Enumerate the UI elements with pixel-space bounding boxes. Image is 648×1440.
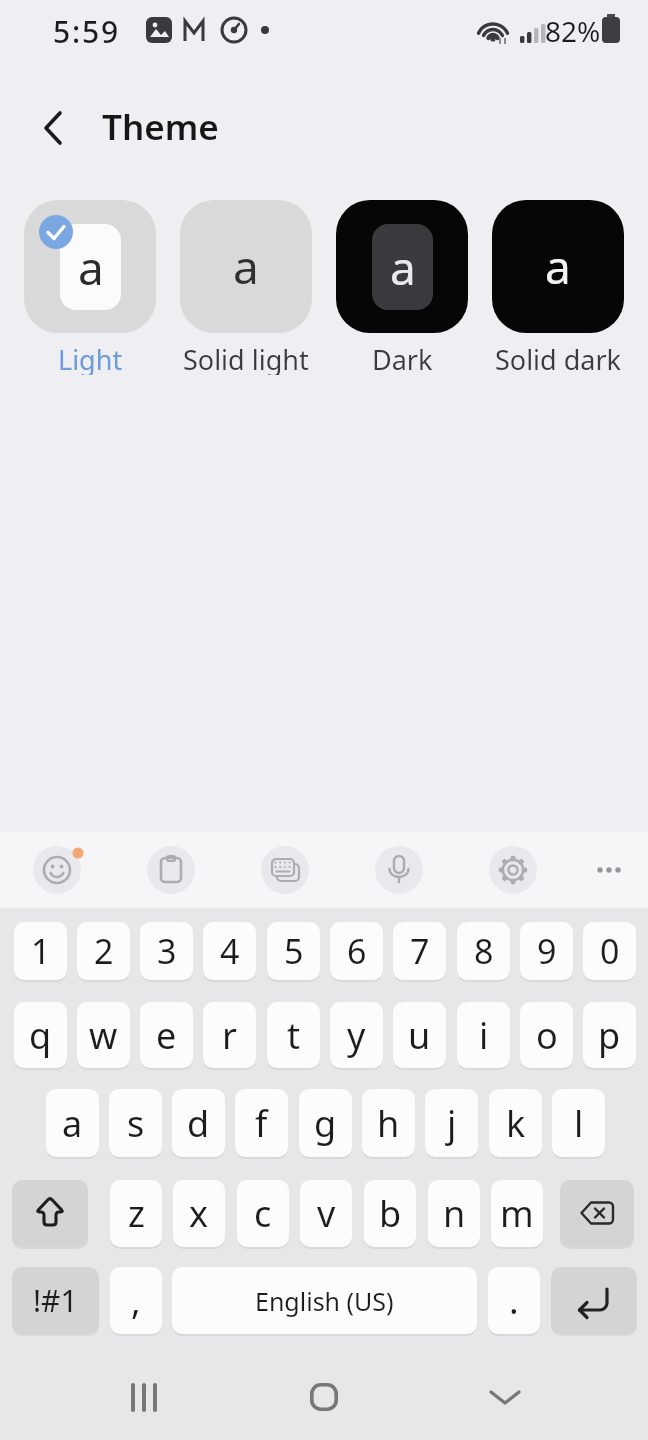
button[interactable]: 9	[520, 922, 573, 980]
button[interactable]: o	[520, 1002, 573, 1068]
button[interactable]: a	[180, 200, 312, 333]
button[interactable]: u	[393, 1002, 446, 1068]
button[interactable]	[109, 1361, 181, 1433]
button[interactable]: 1	[14, 922, 67, 980]
staticText: a	[545, 235, 571, 298]
button[interactable]: q	[14, 1002, 67, 1068]
button[interactable]: a	[46, 1089, 99, 1157]
staticText: a	[78, 236, 104, 299]
button[interactable]: f	[235, 1089, 288, 1157]
staticText: 3	[157, 928, 177, 974]
button[interactable]	[489, 846, 537, 894]
button[interactable]: y	[330, 1002, 383, 1068]
staticText: m	[500, 1189, 534, 1238]
button[interactable]: t	[267, 1002, 320, 1068]
button[interactable]: l	[552, 1089, 605, 1157]
button[interactable]	[584, 846, 632, 894]
staticText: z	[128, 1189, 145, 1238]
button[interactable]: !#1	[12, 1267, 99, 1334]
button[interactable]: r	[203, 1002, 256, 1068]
button[interactable]: z	[110, 1180, 162, 1247]
staticText: !#1	[33, 1280, 78, 1321]
button[interactable]: ,	[110, 1267, 162, 1334]
button[interactable]: 7	[393, 922, 446, 980]
staticText: English (US)	[255, 1284, 394, 1318]
button[interactable]: n	[428, 1180, 480, 1247]
button[interactable]: s	[109, 1089, 162, 1157]
button[interactable]: English (US)	[172, 1267, 477, 1334]
button[interactable]	[375, 846, 423, 894]
button[interactable]	[42, 103, 90, 151]
button[interactable]: b	[364, 1180, 416, 1247]
button[interactable]: 5	[267, 922, 320, 980]
button[interactable]: a	[336, 200, 468, 333]
button[interactable]	[261, 846, 309, 894]
button[interactable]: w	[77, 1002, 130, 1068]
staticText: .	[509, 1276, 519, 1325]
staticText: a	[390, 236, 416, 299]
button[interactable]: e	[140, 1002, 193, 1068]
staticText: p	[598, 1011, 621, 1060]
staticText: 8	[474, 928, 494, 974]
button[interactable]: j	[425, 1089, 478, 1157]
staticText: h	[377, 1099, 400, 1148]
staticText: s	[127, 1099, 145, 1148]
button[interactable]: p	[583, 1002, 636, 1068]
staticText: 82%	[545, 12, 601, 46]
staticText: 2	[94, 928, 114, 974]
button[interactable]: c	[237, 1180, 289, 1247]
staticText: a	[62, 1099, 83, 1148]
button[interactable]: h	[362, 1089, 415, 1157]
button[interactable]: a	[24, 200, 156, 333]
staticText: 9	[537, 928, 557, 974]
button[interactable]: a	[492, 200, 624, 333]
button[interactable]: x	[173, 1180, 225, 1247]
button[interactable]: 3	[140, 922, 193, 980]
button[interactable]: 4	[203, 922, 256, 980]
button[interactable]	[147, 846, 195, 894]
staticText: b	[379, 1189, 402, 1238]
button[interactable]	[288, 1361, 360, 1433]
button[interactable]: v	[300, 1180, 352, 1247]
button[interactable]: .	[488, 1267, 540, 1334]
staticText: c	[254, 1189, 272, 1238]
staticText: Light	[58, 341, 123, 375]
button[interactable]: d	[172, 1089, 225, 1157]
button[interactable]: g	[299, 1089, 352, 1157]
staticText: g	[314, 1099, 337, 1148]
button[interactable]: m	[491, 1180, 543, 1247]
button[interactable]	[33, 846, 81, 894]
staticText: a	[233, 235, 259, 298]
staticText: Theme	[102, 103, 219, 151]
button[interactable]: k	[489, 1089, 542, 1157]
staticText: ,	[131, 1276, 141, 1325]
staticText: Dark	[372, 341, 433, 375]
staticText: d	[187, 1099, 210, 1148]
staticText: x	[189, 1189, 209, 1238]
staticText: f	[255, 1099, 268, 1148]
button[interactable]	[560, 1180, 634, 1247]
button[interactable]: 0	[583, 922, 636, 980]
button[interactable]	[12, 1180, 88, 1247]
staticText: 4	[220, 928, 240, 974]
staticText: 5	[284, 928, 304, 974]
button[interactable]	[551, 1267, 637, 1334]
staticText: n	[443, 1189, 466, 1238]
button[interactable]: i	[457, 1002, 510, 1068]
button[interactable]: 6	[330, 922, 383, 980]
staticText: 7	[410, 928, 430, 974]
staticText: o	[536, 1011, 558, 1060]
staticText: t	[287, 1011, 300, 1060]
staticText: i	[479, 1011, 489, 1060]
staticText: w	[89, 1011, 118, 1060]
staticText: Solid light	[183, 341, 309, 375]
staticText: 1	[31, 928, 51, 974]
button[interactable]: 2	[77, 922, 130, 980]
staticText: e	[156, 1011, 177, 1060]
button[interactable]: 8	[457, 922, 510, 980]
staticText: 5:59	[53, 11, 120, 45]
staticText: l	[574, 1099, 584, 1148]
staticText: k	[506, 1099, 526, 1148]
staticText: y	[347, 1011, 366, 1060]
button[interactable]	[469, 1361, 541, 1433]
